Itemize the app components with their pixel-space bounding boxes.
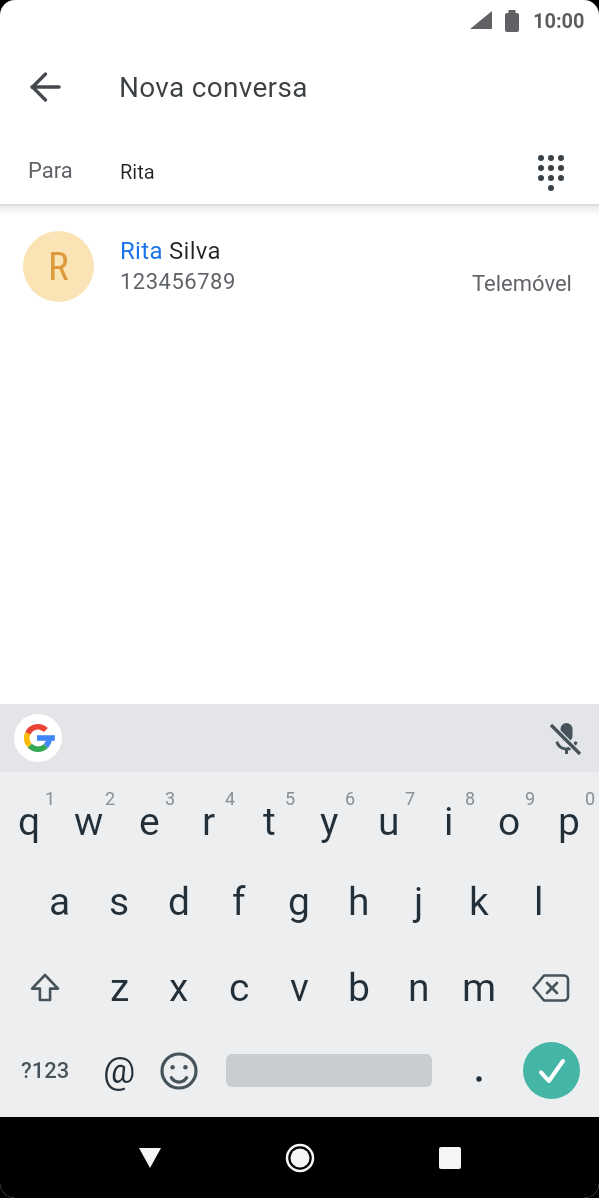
- button[interactable]: ?123: [0, 1031, 90, 1117]
- staticText: v: [290, 965, 309, 1011]
- staticText: t: [263, 799, 276, 845]
- staticText: 2: [105, 788, 116, 809]
- button[interactable]: f: [209, 859, 269, 945]
- staticText: w: [74, 799, 104, 845]
- button[interactable]: [209, 1031, 449, 1117]
- button[interactable]: l: [509, 859, 569, 945]
- staticText: @: [103, 1050, 136, 1092]
- button[interactable]: k: [449, 859, 509, 945]
- button[interactable]: s: [89, 859, 149, 945]
- button[interactable]: [543, 716, 587, 760]
- button[interactable]: [449, 1031, 509, 1117]
- button[interactable]: g: [269, 859, 329, 945]
- button[interactable]: h: [329, 859, 389, 945]
- staticText: y: [320, 799, 339, 845]
- staticText: 4: [225, 788, 236, 809]
- staticText: i: [444, 799, 454, 845]
- button[interactable]: t: [239, 772, 299, 859]
- staticText: 8: [465, 788, 476, 809]
- button[interactable]: d: [149, 859, 209, 945]
- button[interactable]: r: [179, 772, 239, 859]
- staticText: n: [408, 965, 430, 1011]
- staticText: Rita: [120, 160, 155, 183]
- staticText: 1: [45, 788, 56, 809]
- button[interactable]: x: [149, 945, 209, 1031]
- button[interactable]: q: [0, 772, 59, 859]
- button[interactable]: [426, 1134, 474, 1182]
- staticText: 5: [285, 788, 296, 809]
- button[interactable]: o: [479, 772, 539, 859]
- button[interactable]: [0, 945, 90, 1031]
- button[interactable]: [509, 1031, 599, 1117]
- staticText: s: [109, 879, 130, 925]
- button[interactable]: i: [419, 772, 479, 859]
- staticText: q: [18, 799, 41, 845]
- button[interactable]: R: [0, 216, 599, 316]
- staticText: c: [229, 965, 250, 1011]
- button[interactable]: [509, 945, 599, 1031]
- staticText: a: [49, 879, 71, 925]
- staticText: o: [498, 799, 521, 845]
- button[interactable]: m: [449, 945, 509, 1031]
- staticText: Nova conversa: [119, 71, 308, 104]
- button[interactable]: u: [359, 772, 419, 859]
- button[interactable]: c: [209, 945, 269, 1031]
- staticText: x: [169, 965, 189, 1011]
- staticText: k: [469, 879, 489, 925]
- button[interactable]: y: [299, 772, 359, 859]
- staticText: Telemóvel: [472, 271, 572, 297]
- staticText: g: [288, 879, 310, 925]
- button[interactable]: Para: [0, 134, 599, 204]
- button[interactable]: [276, 1134, 324, 1182]
- staticText: b: [348, 965, 370, 1011]
- staticText: 9: [525, 788, 536, 809]
- button[interactable]: [22, 63, 70, 111]
- staticText: 10:00: [533, 9, 585, 32]
- staticText: R: [48, 244, 69, 290]
- staticText: ?123: [21, 1058, 70, 1084]
- staticText: 123456789: [120, 269, 236, 295]
- button[interactable]: n: [389, 945, 449, 1031]
- button[interactable]: b: [329, 945, 389, 1031]
- staticText: Rita Silva: [120, 237, 221, 265]
- staticText: Para: [28, 158, 73, 184]
- button[interactable]: v: [269, 945, 329, 1031]
- button[interactable]: p: [539, 772, 599, 859]
- staticText: 3: [165, 788, 176, 809]
- staticText: m: [462, 965, 497, 1011]
- button[interactable]: j: [389, 859, 449, 945]
- staticText: p: [558, 799, 580, 845]
- staticText: r: [202, 799, 216, 845]
- button[interactable]: z: [90, 945, 149, 1031]
- staticText: l: [534, 879, 544, 925]
- button[interactable]: @: [90, 1031, 149, 1117]
- staticText: h: [348, 879, 370, 925]
- staticText: 7: [405, 788, 416, 809]
- staticText: 0: [585, 788, 596, 809]
- staticText: e: [139, 799, 160, 845]
- button[interactable]: a: [30, 859, 89, 945]
- button[interactable]: e: [119, 772, 179, 859]
- button[interactable]: [14, 714, 62, 762]
- staticText: d: [168, 879, 190, 925]
- staticText: j: [414, 879, 424, 925]
- button[interactable]: [527, 149, 575, 197]
- staticText: z: [110, 965, 130, 1011]
- button[interactable]: w: [59, 772, 119, 859]
- staticText: f: [232, 879, 246, 925]
- button[interactable]: [149, 1031, 209, 1117]
- staticText: u: [378, 799, 400, 845]
- staticText: 6: [345, 788, 356, 809]
- button[interactable]: [126, 1134, 174, 1182]
